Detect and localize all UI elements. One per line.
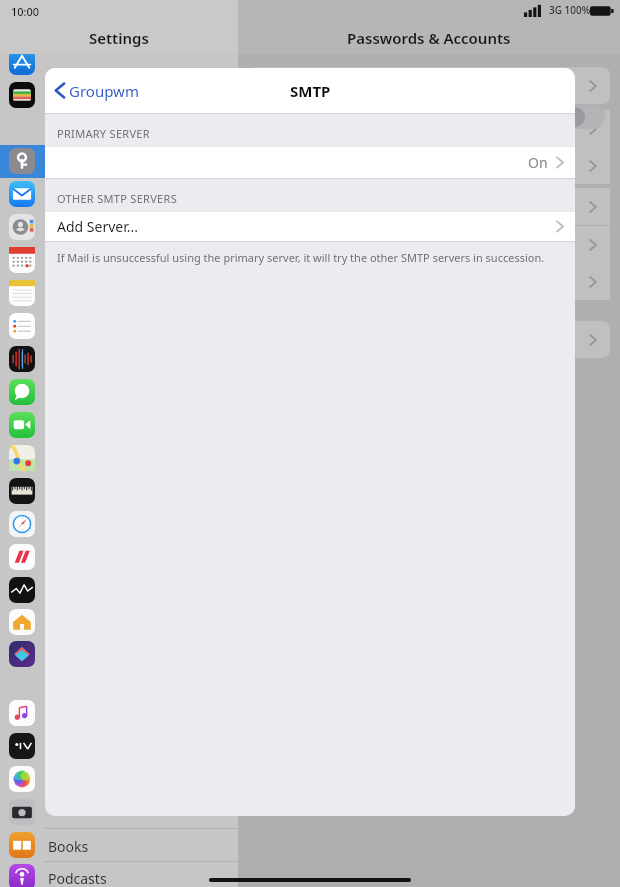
staticText: Books xyxy=(48,837,89,856)
button[interactable] xyxy=(248,67,610,104)
button[interactable] xyxy=(248,226,610,263)
staticText: OTHER SMTP SERVERS xyxy=(57,191,177,206)
staticText: SMTP xyxy=(290,81,331,101)
staticText: Add Server... xyxy=(57,217,138,236)
button[interactable] xyxy=(248,263,610,300)
staticText: PRIMARY SERVER xyxy=(57,126,150,141)
staticText: Passwords & Accounts xyxy=(347,28,511,48)
button[interactable] xyxy=(248,321,610,358)
staticText: Podcasts xyxy=(48,869,107,887)
button[interactable] xyxy=(248,110,610,147)
button[interactable]: On xyxy=(45,147,575,178)
staticText: If Mail is unsuccessful using the primar… xyxy=(57,250,545,265)
staticText: Groupwm xyxy=(69,81,139,101)
staticText: Settings xyxy=(89,28,149,48)
button[interactable] xyxy=(248,188,610,225)
button[interactable] xyxy=(248,147,610,184)
button[interactable] xyxy=(0,145,238,178)
staticText: On xyxy=(528,153,548,172)
staticText: 10:00 xyxy=(11,4,40,19)
staticText: 3G 100% xyxy=(549,3,591,17)
button[interactable]: Toggle setting xyxy=(563,105,605,129)
button[interactable]: Add Server... xyxy=(45,212,575,241)
button[interactable]: Groupwm xyxy=(55,68,139,113)
